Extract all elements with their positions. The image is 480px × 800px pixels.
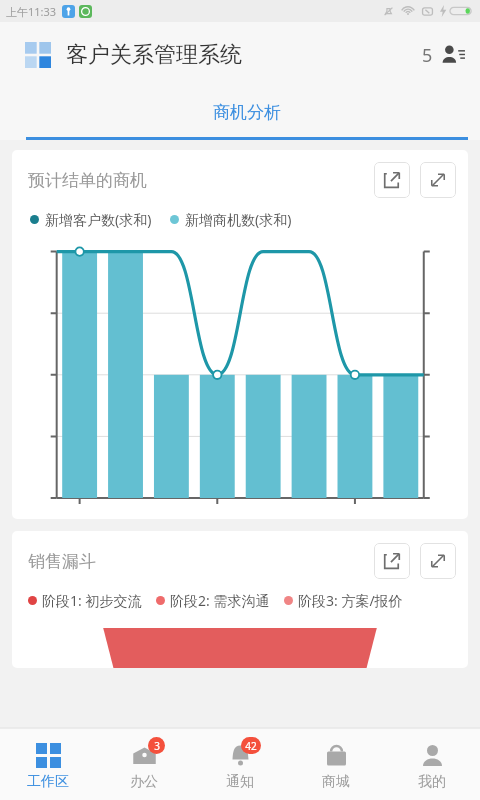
button[interactable]: 工作区 bbox=[0, 728, 96, 800]
staticText: 上午11:33 bbox=[6, 4, 57, 19]
button[interactable]: Open in new bbox=[374, 543, 410, 579]
button[interactable]: Open in new bbox=[374, 162, 410, 198]
staticText: 新增客户数(求和) bbox=[45, 210, 152, 229]
staticText: 42 bbox=[245, 739, 257, 753]
button[interactable]: Fullscreen bbox=[420, 543, 456, 579]
staticText: 阶段1: 初步交流 bbox=[42, 591, 142, 610]
button[interactable]: Members bbox=[422, 42, 466, 68]
staticText: 3 bbox=[154, 739, 160, 753]
staticText: 销售漏斗 bbox=[28, 551, 96, 572]
staticText: 通知 bbox=[226, 773, 254, 791]
staticText: 阶段2: 需求沟通 bbox=[170, 591, 270, 610]
staticText: 预计结单的商机 bbox=[28, 170, 147, 191]
staticText: 5 bbox=[422, 43, 433, 68]
staticText: 阶段3: 方案/报价 bbox=[298, 591, 403, 610]
staticText: 新增商机数(求和) bbox=[185, 210, 292, 229]
staticText: 工作区 bbox=[27, 773, 69, 791]
button[interactable]: 42 bbox=[192, 728, 288, 800]
button[interactable]: 我的 bbox=[384, 728, 480, 800]
staticText: 我的 bbox=[418, 773, 446, 791]
staticText: 商机分析 bbox=[213, 102, 281, 123]
staticText: 商城 bbox=[322, 773, 350, 791]
button[interactable]: 商城 bbox=[288, 728, 384, 800]
button[interactable]: 3 bbox=[96, 728, 192, 800]
button[interactable]: 商机分析 bbox=[14, 88, 480, 140]
button[interactable]: Apps bbox=[18, 35, 58, 75]
button[interactable]: Fullscreen bbox=[420, 162, 456, 198]
staticText: 客户关系管理系统 bbox=[66, 41, 242, 69]
staticText: 办公 bbox=[130, 773, 158, 791]
